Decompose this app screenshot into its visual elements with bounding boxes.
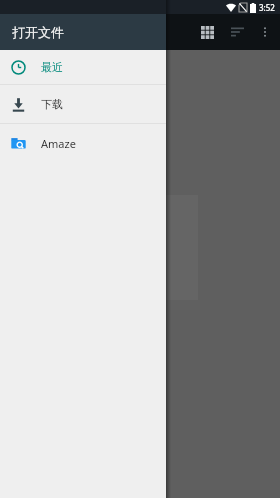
button[interactable]: Sort [222, 17, 252, 47]
staticText: 打开文件 [12, 24, 64, 40]
button[interactable]: 最近 [0, 50, 166, 84]
staticText: Amaze [41, 136, 76, 151]
staticText: 3:52 [259, 2, 275, 13]
button[interactable]: More options [252, 19, 278, 45]
button[interactable]: Grid view [192, 17, 222, 47]
staticText: 最近 [41, 60, 63, 74]
button[interactable]: Amaze [0, 124, 166, 162]
staticText: 下载 [41, 97, 63, 111]
button[interactable]: 下载 [0, 85, 166, 123]
